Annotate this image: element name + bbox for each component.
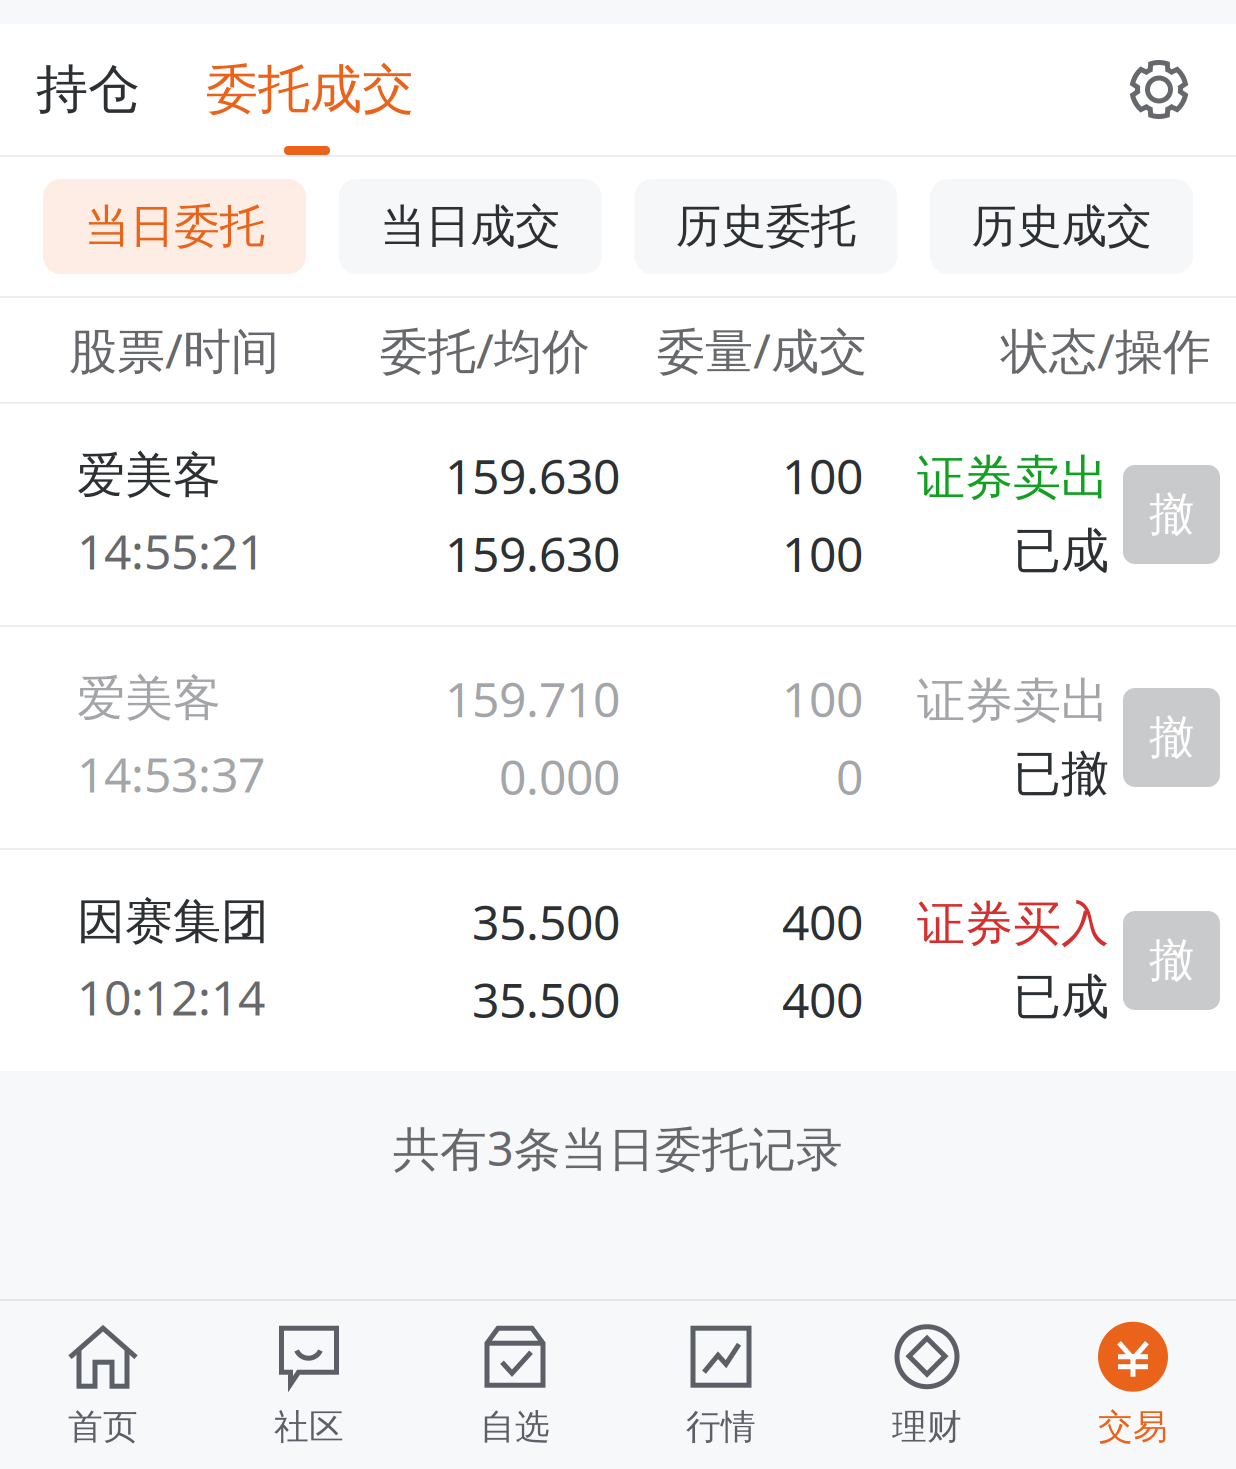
button[interactable]: 首页 <box>0 1301 206 1469</box>
staticText: 状态/操作 <box>1001 318 1211 382</box>
staticText: 因赛集团 <box>77 892 269 951</box>
staticText: 委托/均价 <box>380 318 590 382</box>
staticText: 共有3条当日委托记录 <box>393 1117 843 1179</box>
staticText: 行情 <box>686 1406 756 1448</box>
staticText: 400 <box>782 890 863 953</box>
button[interactable]: Settings <box>1128 58 1236 120</box>
staticText: 100 <box>782 667 863 730</box>
button[interactable]: 社区 <box>206 1301 412 1469</box>
staticText: 10:12:14 <box>77 965 265 1029</box>
staticText: 100 <box>782 444 863 507</box>
button[interactable]: 历史成交 <box>930 179 1193 274</box>
staticText: 自选 <box>480 1406 550 1448</box>
staticText: 14:53:37 <box>77 742 265 806</box>
staticText: 159.710 <box>445 667 620 730</box>
button[interactable]: 交易 <box>1030 1301 1236 1469</box>
staticText: 撤 <box>1149 710 1194 765</box>
staticText: 撤 <box>1149 487 1194 542</box>
staticText: 0.000 <box>499 744 620 808</box>
staticText: 首页 <box>68 1406 138 1448</box>
staticText: 已成 <box>1013 967 1109 1026</box>
button[interactable]: 当日委托 <box>43 179 306 274</box>
button[interactable]: 持仓 <box>0 24 206 155</box>
staticText: 当日委托 <box>84 199 264 254</box>
staticText: 社区 <box>274 1406 344 1448</box>
staticText: 爱美客 <box>77 446 221 505</box>
button[interactable]: 委托成交 <box>206 24 414 155</box>
staticText: 35.500 <box>472 967 620 1031</box>
staticText: 委托成交 <box>206 58 414 121</box>
staticText: 证券卖出 <box>917 671 1109 730</box>
staticText: 159.630 <box>445 444 620 507</box>
staticText: 当日成交 <box>380 199 560 254</box>
staticText: 委量/成交 <box>657 318 867 382</box>
staticText: 159.630 <box>445 521 620 585</box>
staticText: 证券卖出 <box>917 448 1109 507</box>
button[interactable]: 行情 <box>618 1301 824 1469</box>
staticText: 股票/时间 <box>69 318 279 382</box>
button[interactable]: 历史委托 <box>634 179 897 274</box>
staticText: 历史成交 <box>971 199 1151 254</box>
button[interactable]: 撤 <box>1123 688 1220 787</box>
staticText: 交易 <box>1098 1406 1168 1448</box>
staticText: 爱美客 <box>77 669 221 728</box>
staticText: 已撤 <box>1013 744 1109 803</box>
staticText: 35.500 <box>472 890 620 953</box>
staticText: 0 <box>836 744 863 808</box>
staticText: 已成 <box>1013 521 1109 580</box>
staticText: 14:55:21 <box>77 519 265 583</box>
staticText: 理财 <box>892 1406 962 1448</box>
button[interactable]: 当日成交 <box>339 179 602 274</box>
button[interactable]: 撤 <box>1123 465 1220 564</box>
staticText: 100 <box>782 521 863 585</box>
button[interactable]: 理财 <box>824 1301 1030 1469</box>
button[interactable]: 自选 <box>412 1301 618 1469</box>
button[interactable]: 撤 <box>1123 911 1220 1010</box>
staticText: 证券买入 <box>917 894 1109 953</box>
staticText: 撤 <box>1149 933 1194 988</box>
staticText: 400 <box>782 967 863 1031</box>
staticText: 历史委托 <box>676 199 856 254</box>
staticText: 持仓 <box>36 58 140 121</box>
